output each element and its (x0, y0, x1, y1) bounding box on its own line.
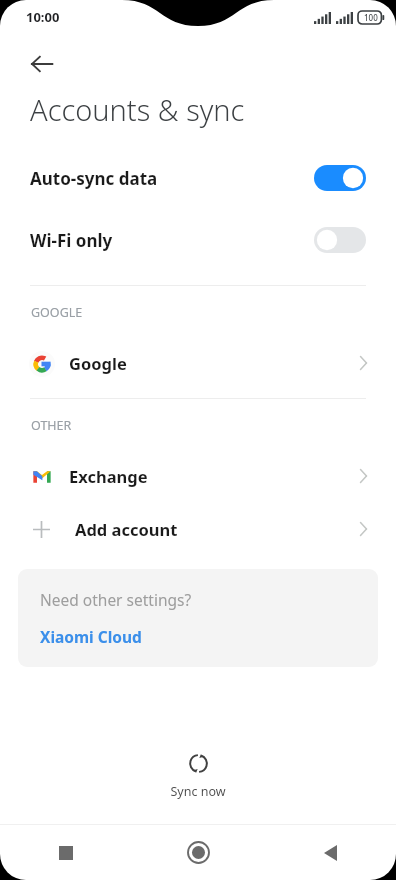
button[interactable]: Xiaomi Cloud (40, 626, 142, 647)
staticText: OTHER (31, 417, 72, 434)
button[interactable]: Google (0, 338, 396, 388)
staticText: Auto-sync data (30, 167, 158, 190)
staticText: 10:00 (26, 8, 60, 26)
button[interactable]: Sync now (0, 752, 396, 800)
button[interactable]: Wi-Fi only (0, 209, 396, 271)
button[interactable]: Back (18, 40, 66, 88)
staticText: Need other settings? (40, 589, 192, 610)
staticText: Accounts & sync (30, 90, 245, 129)
button[interactable]: Home (132, 825, 264, 880)
staticText: 100 (364, 12, 378, 23)
staticText: Xiaomi Cloud (40, 626, 142, 647)
button[interactable]: Recent apps (0, 825, 132, 880)
button[interactable]: Add account (0, 501, 396, 557)
button[interactable]: Auto-sync data (0, 147, 396, 209)
button[interactable]: Back (264, 825, 396, 880)
button[interactable]: Exchange (0, 451, 396, 501)
staticText: GOOGLE (31, 304, 83, 321)
staticText: Exchange (69, 465, 148, 487)
staticText: Wi-Fi only (30, 229, 113, 252)
staticText: Sync now (170, 783, 226, 800)
staticText: Google (69, 352, 127, 374)
staticText: Add account (75, 518, 178, 540)
